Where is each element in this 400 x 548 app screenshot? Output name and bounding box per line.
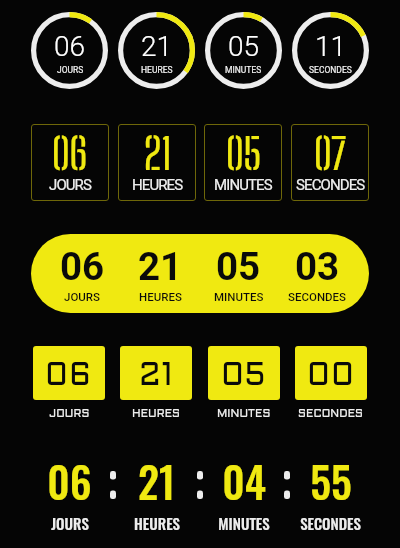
staticText: HEURES	[141, 65, 173, 75]
staticText: 06	[54, 30, 86, 63]
staticText: 55	[310, 450, 352, 512]
staticText: JOURS	[64, 290, 101, 303]
button[interactable]: HEURES	[118, 12, 195, 89]
button[interactable]: 05	[208, 346, 280, 419]
staticText: SECONDES	[288, 290, 347, 303]
staticText: 05	[226, 128, 261, 179]
staticText: MINUTES	[214, 176, 272, 194]
button[interactable]: 21	[118, 450, 195, 534]
button[interactable]: 06	[31, 234, 369, 313]
button[interactable]: 04	[205, 450, 282, 534]
staticText: 11	[315, 30, 347, 63]
button[interactable]: 55	[292, 450, 369, 534]
staticText: 06	[52, 128, 88, 179]
staticText: MINUTES	[217, 409, 271, 419]
button[interactable]: 21	[118, 124, 196, 201]
button[interactable]: MINUTES	[205, 12, 282, 89]
staticText: SECONDES	[296, 176, 365, 194]
staticText: 21	[141, 30, 173, 63]
staticText: 21	[139, 362, 174, 391]
staticText: 05	[228, 30, 260, 63]
button[interactable]: 06	[31, 450, 108, 534]
staticText: 21	[144, 128, 172, 179]
staticText: 04	[222, 450, 266, 512]
staticText: MINUTES	[225, 65, 262, 75]
staticText: HEURES	[139, 290, 182, 303]
staticText: HEURES	[132, 409, 181, 419]
staticText: JOURS	[51, 512, 89, 534]
button[interactable]: JOURS	[31, 12, 108, 89]
staticText: 06	[47, 450, 92, 512]
button[interactable]: 06	[33, 346, 105, 419]
staticText: HEURES	[132, 176, 183, 194]
staticText: JOURS	[49, 176, 91, 194]
staticText: JOURS	[49, 409, 90, 419]
staticText: JOURS	[57, 65, 84, 75]
staticText: MINUTES	[214, 290, 264, 303]
staticText: 06	[60, 244, 105, 289]
button[interactable]: 06	[31, 124, 109, 201]
staticText: HEURES	[134, 512, 180, 534]
button[interactable]: 05	[204, 124, 282, 201]
staticText: SECONDES	[298, 409, 364, 419]
staticText: 21	[138, 244, 183, 289]
staticText: 06	[45, 362, 93, 391]
staticText: SECONDES	[309, 65, 352, 75]
staticText: 00	[307, 362, 355, 391]
staticText: 05	[216, 244, 261, 289]
staticText: 21	[138, 450, 175, 512]
staticText: 03	[295, 244, 340, 289]
staticText: MINUTES	[218, 512, 270, 534]
staticText: 05	[221, 362, 267, 391]
button[interactable]: 21	[120, 346, 192, 419]
staticText: 07	[314, 128, 347, 179]
button[interactable]: 07	[291, 124, 369, 201]
button[interactable]: SECONDES	[292, 12, 369, 89]
staticText: SECONDES	[300, 512, 361, 534]
button[interactable]: 00	[295, 346, 367, 419]
